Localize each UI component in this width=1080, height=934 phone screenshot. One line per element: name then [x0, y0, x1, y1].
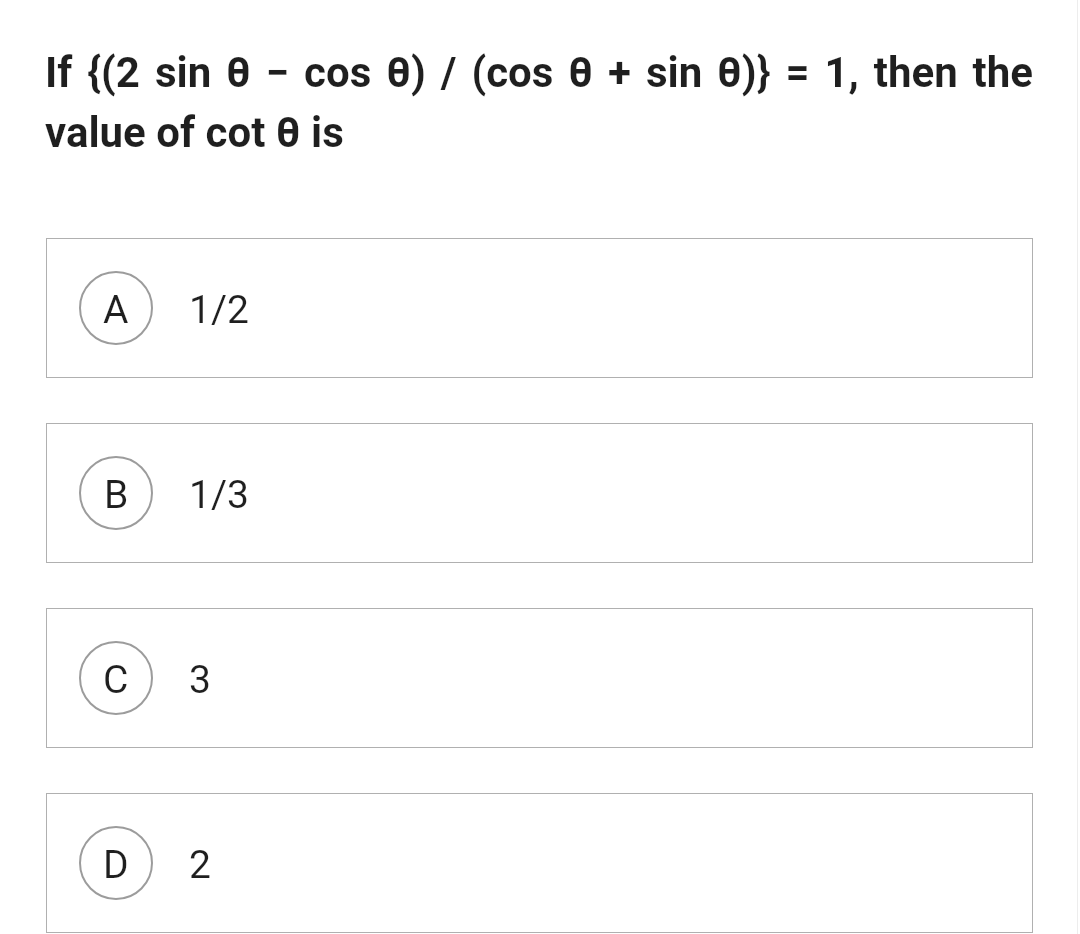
staticText: 1/3: [189, 472, 249, 518]
staticText: 1/2: [189, 287, 249, 333]
button[interactable]: Option D: 2: [46, 793, 1033, 933]
staticText: 2: [189, 842, 211, 888]
staticText: B: [104, 472, 129, 518]
staticText: D: [103, 842, 129, 888]
button[interactable]: Option B: 1/3: [46, 423, 1033, 563]
staticText: 3: [189, 657, 211, 703]
button[interactable]: Option A: 1/2: [46, 238, 1033, 378]
staticText: If {(2 sin θ − cos θ) / (cos θ + sin θ)}…: [45, 48, 1033, 157]
button[interactable]: Option C: 3: [46, 608, 1033, 748]
staticText: A: [103, 287, 129, 333]
staticText: C: [103, 657, 129, 703]
